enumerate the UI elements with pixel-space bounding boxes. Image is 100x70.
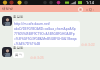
staticText: 오후 3:25 [30, 56, 44, 60]
staticText: 채팅방 [2, 7, 13, 12]
button[interactable]: http://m.cafe.daum.net/ abcD/DEFG?BOARD=… [14, 22, 79, 46]
button[interactable]: Profile photo [2, 47, 12, 57]
button[interactable]: 음ㅋ [15, 53, 22, 57]
staticText: http://m.cafe.daum.net/ abcD/DEFG?BOARD=… [14, 22, 77, 46]
staticText: 1:14 [86, 0, 94, 5]
button[interactable]: 채팅방 [1, 6, 14, 13]
button[interactable]: More [85, 6, 95, 13]
button[interactable]: Profile photo [2, 16, 12, 26]
staticText: 홍길동 [13, 15, 24, 19]
staticText: = Q : [86, 7, 94, 12]
staticText: 음ㅋ [15, 53, 22, 57]
staticText: 홍길동 [13, 46, 24, 50]
staticText: 오후 3:22 [81, 43, 95, 47]
button[interactable]: Gift [78, 7, 83, 12]
